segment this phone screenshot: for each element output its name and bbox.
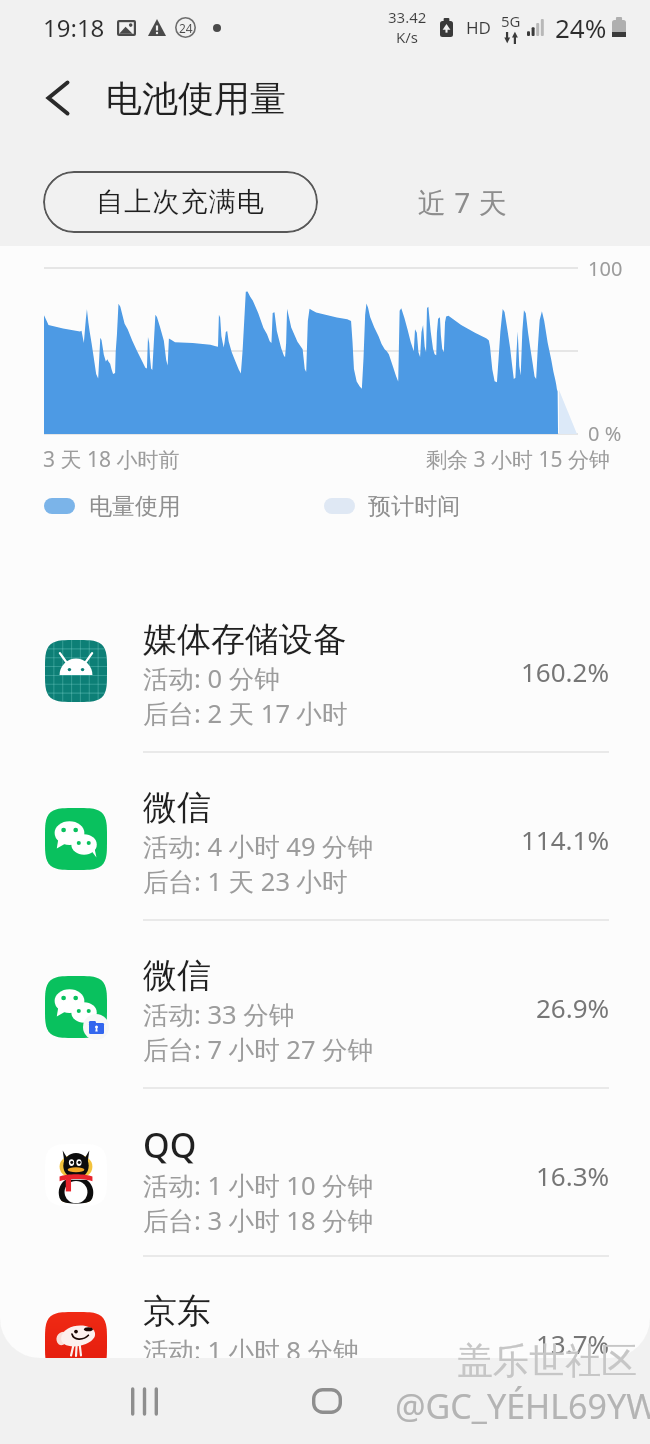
button[interactable]: 媒体存储设备: [0, 586, 650, 754]
staticText: HD: [466, 16, 492, 39]
staticText: 活动: 1 小时 10 分钟: [143, 1168, 374, 1203]
staticText: 24%: [555, 10, 607, 45]
staticText: K/s: [396, 27, 419, 47]
staticText: 微信: [143, 954, 211, 997]
staticText: 自上次充满电: [96, 185, 266, 219]
staticText: 活动: 0 分钟: [143, 661, 280, 696]
staticText: 16.3%: [536, 1158, 610, 1193]
staticText: QQ: [143, 1122, 197, 1168]
staticText: 近 7 天: [418, 183, 508, 221]
button[interactable]: 京东: [0, 1258, 650, 1358]
staticText: 后台: 7 小时 27 分钟: [143, 1032, 374, 1067]
staticText: 电量使用: [89, 492, 181, 520]
button[interactable]: 微信: [0, 754, 650, 922]
staticText: 160.2%: [521, 654, 610, 689]
staticText: 活动: 33 分钟: [143, 997, 295, 1032]
staticText: 后台: 2 天 17 小时: [143, 696, 348, 731]
staticText: 后台: 1 天 23 小时: [143, 864, 348, 899]
staticText: 媒体存储设备: [143, 618, 347, 661]
button[interactable]: QQ: [0, 1090, 650, 1258]
staticText: 13.7%: [536, 1326, 610, 1358]
button[interactable]: Back: [464, 1358, 551, 1444]
staticText: 100: [588, 255, 623, 282]
staticText: 26.9%: [536, 990, 610, 1025]
staticText: @GC_YÉHL69YW: [395, 1383, 650, 1429]
staticText: 活动: 4 小时 49 分钟: [143, 829, 374, 864]
staticText: 活动: 1 小时 8 分钟: [143, 1333, 359, 1358]
button[interactable]: Home: [283, 1358, 370, 1444]
staticText: 3 天 18 小时前: [43, 445, 180, 474]
button[interactable]: 微信: [0, 922, 650, 1090]
button[interactable]: Back: [32, 72, 84, 124]
staticText: 预计时间: [368, 492, 460, 520]
staticText: 33.42: [388, 7, 427, 27]
staticText: 24: [179, 20, 193, 36]
staticText: 114.1%: [521, 822, 610, 857]
staticText: 0 %: [588, 420, 622, 447]
staticText: 微信: [143, 786, 211, 829]
staticText: 19:18: [43, 11, 105, 44]
staticText: 京东: [143, 1290, 211, 1333]
staticText: 后台: 3 小时 18 分钟: [143, 1203, 374, 1238]
staticText: 电池使用量: [106, 76, 286, 121]
button[interactable]: 自上次充满电: [43, 171, 318, 233]
staticText: 剩余 3 小时 15 分钟: [426, 445, 610, 474]
button[interactable]: Recent apps: [101, 1358, 188, 1444]
staticText: 5G: [501, 11, 521, 31]
staticText: 盖乐世社区: [457, 1338, 637, 1383]
button[interactable]: 近 7 天: [398, 171, 528, 233]
